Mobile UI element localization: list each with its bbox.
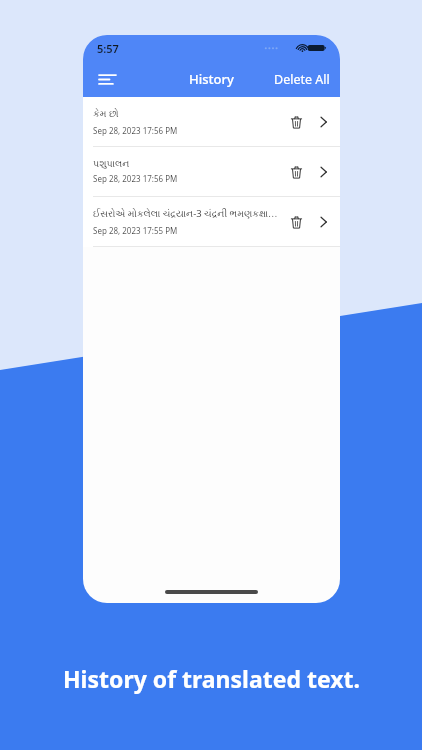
staticText: History xyxy=(189,70,234,88)
staticText: ઈસરોએ મોકલેલા ચંદ્રયાન-3 ચંદ્રની ભમણકક્ષ… xyxy=(93,207,282,220)
button[interactable]: Open xyxy=(310,209,336,235)
button[interactable]: Delete xyxy=(282,158,310,186)
button[interactable]: Delete xyxy=(282,208,310,236)
staticText: કેમ છો xyxy=(93,107,119,120)
button[interactable]: ઈસરોએ મોકલેલા ચંદ્રયાન-3 ચંદ્રની ભમણકક્ષ… xyxy=(83,197,340,247)
button[interactable]: કેમ છો xyxy=(83,97,340,147)
button[interactable]: Delete All xyxy=(264,65,340,94)
button[interactable]: પશુપાલન xyxy=(83,147,340,197)
staticText: Delete All xyxy=(274,71,330,88)
staticText: પશુપાલન xyxy=(93,159,130,168)
staticText: Sep 28, 2023 17:56 PM xyxy=(93,173,178,184)
button[interactable]: Open xyxy=(310,109,336,135)
staticText: Sep 28, 2023 17:56 PM xyxy=(93,125,178,136)
button[interactable]: Delete xyxy=(282,108,310,136)
button[interactable]: Open xyxy=(310,159,336,185)
staticText: 5:57 xyxy=(97,41,119,56)
button[interactable]: Menu xyxy=(91,63,123,95)
staticText: Sep 28, 2023 17:55 PM xyxy=(93,225,178,236)
staticText: History of translated text. xyxy=(63,663,360,694)
